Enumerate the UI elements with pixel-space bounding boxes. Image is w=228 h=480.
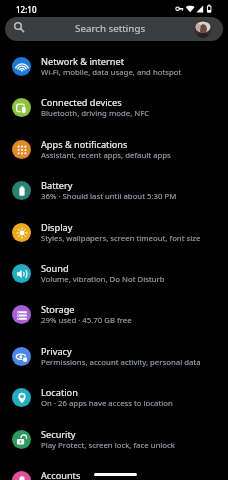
staticText: Search settings: [75, 22, 146, 35]
button[interactable]: Account: [194, 20, 212, 38]
staticText: Accounts: [41, 469, 81, 480]
staticText: Battery: [41, 179, 73, 192]
other: Search: [14, 22, 24, 32]
staticText: Bluetooth, driving mode, NFC: [41, 108, 150, 119]
staticText: Volume, vibration, Do Not Disturb: [41, 274, 165, 285]
staticText: 12:10: [16, 4, 37, 15]
staticText: 36% · Should last until about 5:30 PM: [41, 191, 177, 202]
staticText: Network & internet: [41, 55, 124, 68]
button[interactable]: Network & internet: [0, 46, 228, 87]
button[interactable]: Display: [0, 212, 228, 253]
staticText: Display: [41, 221, 73, 234]
button[interactable]: Privacy: [0, 336, 228, 377]
staticText: Connected devices: [41, 96, 122, 109]
staticText: Styles, wallpapers, screen timeout, font…: [41, 233, 201, 244]
staticText: Storage: [41, 303, 75, 316]
button[interactable]: Connected devices: [0, 87, 228, 128]
staticText: On · 26 apps have access to location: [41, 398, 173, 409]
staticText: Apps & notifications: [41, 138, 128, 151]
staticText: Privacy: [41, 345, 72, 358]
staticText: Location: [41, 386, 78, 399]
button[interactable]: Security: [0, 419, 228, 460]
button[interactable]: Sound: [0, 253, 228, 294]
staticText: Security: [41, 428, 76, 441]
button[interactable]: Apps & notifications: [0, 129, 228, 170]
staticText: 29% used · 45.70 GB free: [41, 315, 132, 326]
staticText: Permissions, account activity, personal …: [41, 357, 201, 368]
staticText: Play Protect, screen lock, face unlock: [41, 440, 175, 451]
button[interactable]: Battery: [0, 170, 228, 211]
staticText: Sound: [41, 262, 69, 275]
button[interactable]: Storage: [0, 294, 228, 335]
button[interactable]: Search: [5, 17, 223, 41]
staticText: Wi-Fi, mobile, data usage, and hotspot: [41, 67, 182, 78]
staticText: Assistant, recent apps, default apps: [41, 150, 171, 161]
button[interactable]: Location: [0, 377, 228, 418]
button[interactable]: Accounts: [0, 460, 228, 480]
